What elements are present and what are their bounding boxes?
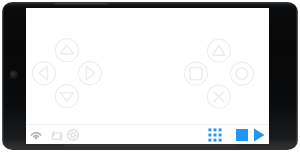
- button[interactable]: Stop: [232, 125, 252, 145]
- button[interactable]: Play: [249, 125, 269, 145]
- button[interactable]: Settings: [65, 127, 81, 143]
- button[interactable]: Screenshot: [49, 127, 65, 143]
- button[interactable]: Wi-Fi: [28, 127, 44, 143]
- button[interactable]: All apps: [205, 125, 225, 145]
